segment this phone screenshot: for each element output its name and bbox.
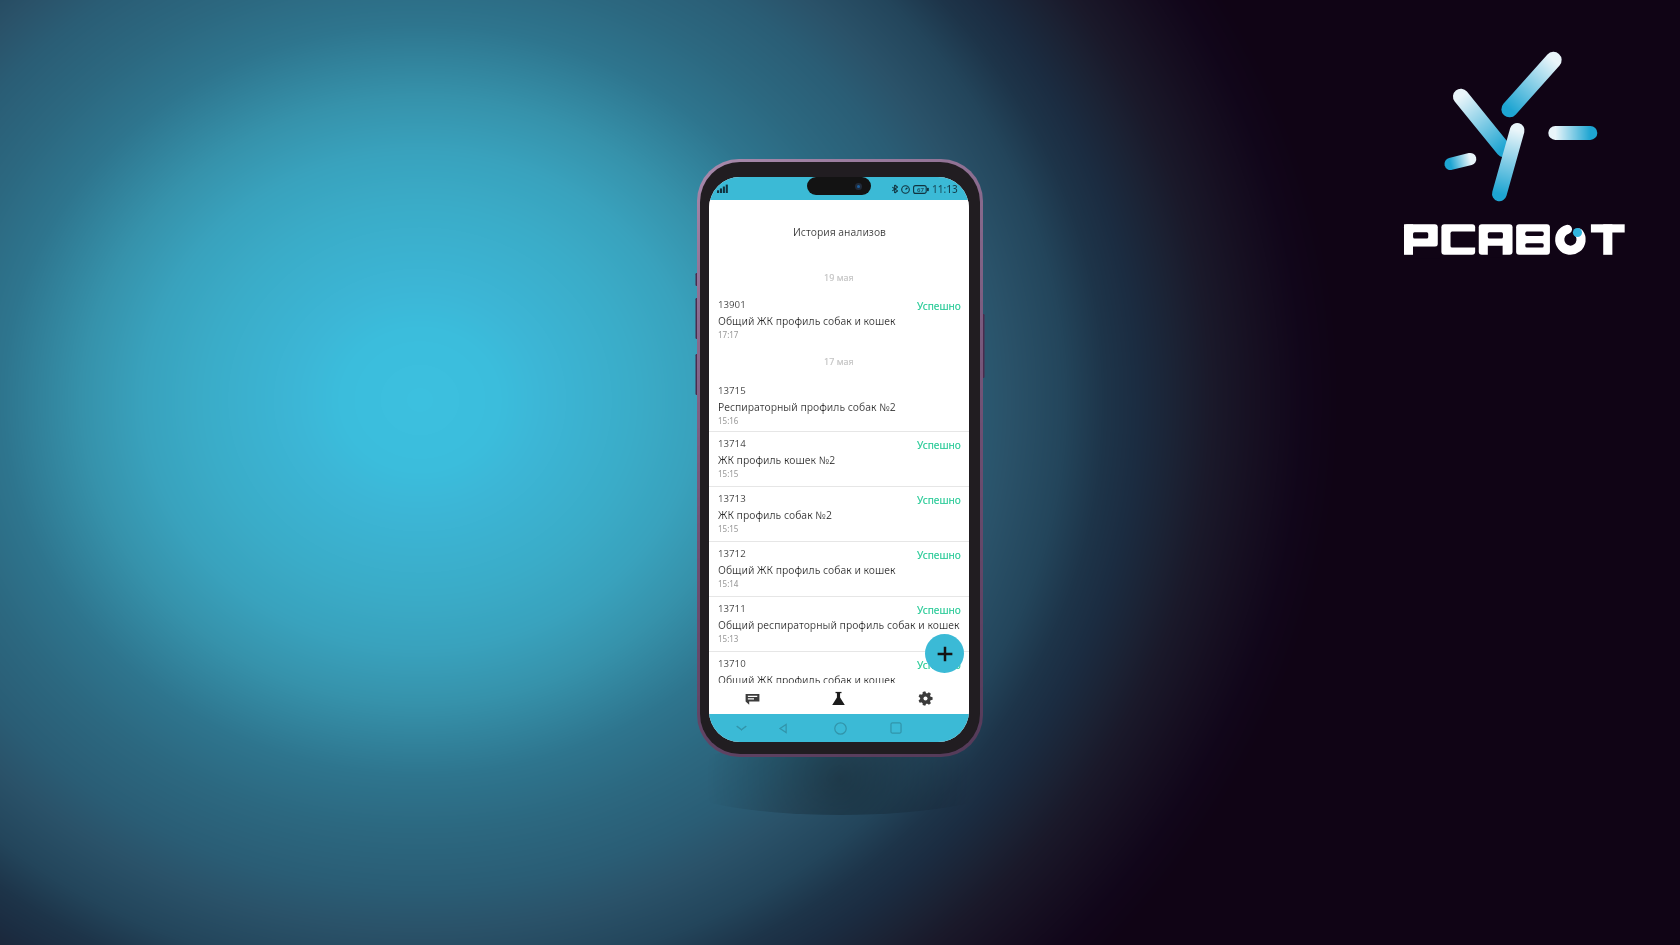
staticText: Успешно: [917, 548, 961, 562]
staticText: Общий ЖК профиль собак и кошек: [718, 314, 896, 328]
staticText: 13710: [718, 657, 746, 670]
staticText: 15:15: [718, 523, 739, 534]
staticText: 19 мая: [824, 271, 854, 283]
button[interactable]: 13711: [709, 596, 969, 651]
button[interactable]: Recents: [882, 714, 910, 742]
staticText: История анализов: [793, 225, 886, 239]
staticText: Успешно: [917, 299, 961, 313]
staticText: 13711: [718, 602, 746, 615]
button[interactable]: Hide keyboard: [727, 714, 755, 742]
staticText: 13712: [718, 547, 746, 560]
button[interactable]: 13713: [709, 486, 969, 541]
staticText: 13714: [718, 437, 746, 450]
staticText: 11:13: [932, 182, 958, 196]
button[interactable]: Analyses: [795, 683, 882, 714]
button[interactable]: Settings: [882, 683, 969, 714]
staticText: ЖК профиль собак №2: [718, 508, 832, 522]
button[interactable]: Back: [769, 714, 797, 742]
staticText: 67: [917, 186, 924, 194]
button[interactable]: Add analysis: [925, 634, 964, 673]
staticText: 15:13: [718, 633, 739, 644]
staticText: 15:14: [718, 578, 739, 589]
staticText: 15:15: [718, 468, 739, 479]
staticText: Успешно: [917, 658, 961, 672]
staticText: Успешно: [917, 493, 961, 507]
staticText: ЖК профиль кошек №2: [718, 453, 836, 467]
staticText: Респираторный профиль собак №2: [718, 400, 896, 414]
button[interactable]: Chat: [709, 683, 795, 714]
staticText: 13713: [718, 492, 746, 505]
staticText: 17:17: [718, 329, 739, 340]
button[interactable]: Home: [826, 714, 854, 742]
button[interactable]: 13715: [709, 376, 969, 431]
staticText: 13901: [718, 298, 746, 311]
button[interactable]: 13714: [709, 431, 969, 486]
staticText: Общий респираторный профиль собак и коше…: [718, 618, 960, 632]
staticText: 17 мая: [824, 355, 854, 367]
button[interactable]: 13712: [709, 541, 969, 596]
staticText: Успешно: [917, 438, 961, 452]
staticText: 15:16: [718, 415, 739, 426]
button[interactable]: 13710: [709, 651, 969, 683]
button[interactable]: 13901: [709, 290, 969, 345]
staticText: 13715: [718, 384, 746, 397]
staticText: Успешно: [917, 603, 961, 617]
staticText: Общий ЖК профиль собак и кошек: [718, 563, 896, 577]
staticText: Общий ЖК профиль собак и кошек: [718, 673, 896, 683]
